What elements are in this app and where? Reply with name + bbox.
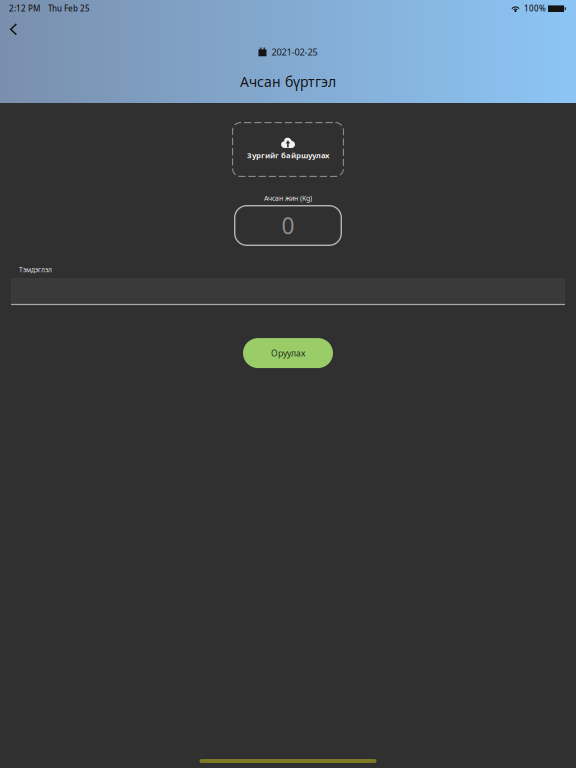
staticText: 100% — [524, 3, 546, 14]
staticText: Thu Feb 25 — [48, 3, 90, 14]
staticText: Ачсан бүртгэл — [240, 72, 336, 91]
staticText: 0 — [281, 210, 294, 241]
button[interactable]: Зургийг байршуулах — [232, 122, 344, 177]
staticText: 2:12 PM — [9, 3, 40, 14]
staticText: Оруулах — [271, 347, 305, 359]
staticText: 2021-02-25 — [271, 46, 317, 58]
staticText: Зургийг байршуулах — [247, 150, 329, 160]
staticText: Ачсан жин (Kg) — [264, 193, 312, 203]
button[interactable]: 0 — [234, 205, 342, 246]
button[interactable] — [11, 278, 565, 305]
button[interactable]: Back — [0, 17, 32, 42]
staticText: Тэмдэглэл — [19, 265, 52, 274]
button[interactable]: Оруулах — [243, 338, 333, 368]
